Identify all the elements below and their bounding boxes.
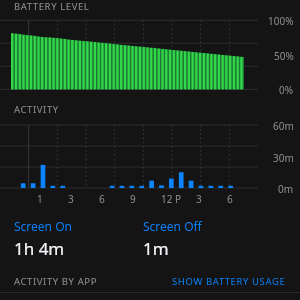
staticText: SHOW BATTERY USAGE xyxy=(172,275,286,288)
button[interactable]: SHOW BATTERY USAGE xyxy=(172,275,286,288)
staticText: 100% xyxy=(268,14,294,28)
staticText: Screen On xyxy=(14,218,72,234)
staticText: 1m xyxy=(143,237,169,260)
staticText: 6 xyxy=(99,192,105,206)
staticText: 6 xyxy=(227,192,233,206)
staticText: 3 xyxy=(68,192,74,206)
staticText: 1 xyxy=(37,192,43,206)
staticText: 9 xyxy=(130,192,136,206)
staticText: 1h 4m xyxy=(14,237,65,260)
button[interactable]: Screen On xyxy=(14,218,140,260)
staticText: BATTERY LEVEL xyxy=(14,0,90,13)
staticText: 12 P xyxy=(161,192,182,206)
button[interactable]: Screen Off xyxy=(143,218,280,260)
staticText: Screen Off xyxy=(143,218,202,234)
staticText: ACTIVITY BY APP xyxy=(14,275,98,288)
staticText: 0m xyxy=(278,182,294,196)
staticText: 50% xyxy=(274,49,294,63)
staticText: 0% xyxy=(279,83,294,97)
staticText: 3 xyxy=(196,192,202,206)
staticText: ACTIVITY xyxy=(14,103,59,116)
staticText: 60m xyxy=(273,119,294,133)
staticText: 30m xyxy=(273,151,294,165)
